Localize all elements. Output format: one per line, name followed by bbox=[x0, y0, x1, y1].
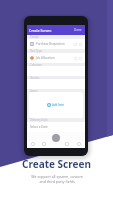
staticText: Job Allocation bbox=[36, 56, 55, 60]
staticText: Items bbox=[30, 89, 38, 92]
button[interactable]: Profile bbox=[73, 139, 85, 148]
button[interactable]: Home bbox=[27, 139, 38, 148]
button[interactable]: Add Item bbox=[29, 92, 83, 118]
button[interactable]: Purchase Requisition bbox=[27, 39, 85, 49]
staticText: Delivery Date bbox=[30, 118, 48, 122]
staticText: Create Screen bbox=[29, 28, 52, 33]
staticText: We support all system, custom and third … bbox=[31, 174, 83, 184]
staticText: Create Screen bbox=[22, 157, 91, 171]
button[interactable]: Search bbox=[38, 139, 49, 148]
staticText: Done bbox=[74, 28, 82, 32]
staticText: Doc Type bbox=[30, 49, 43, 53]
staticText: Add Item bbox=[52, 103, 65, 107]
staticText: Purchase Requisition bbox=[36, 42, 65, 46]
staticText: Select a Date bbox=[30, 125, 48, 129]
button[interactable]: Job Allocation bbox=[27, 53, 85, 63]
button[interactable]: Create Screen bbox=[27, 25, 85, 35]
staticText: Vendor bbox=[30, 76, 40, 79]
staticText: Create bbox=[30, 35, 39, 39]
button[interactable]: Add bbox=[52, 134, 60, 142]
button[interactable]: Alerts bbox=[61, 139, 73, 148]
button[interactable]: Select a Date bbox=[27, 122, 85, 132]
staticText: Category bbox=[30, 63, 42, 66]
